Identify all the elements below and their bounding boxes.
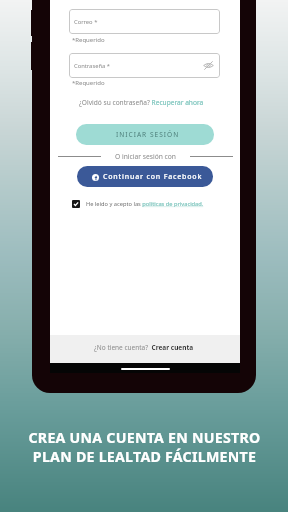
staticText: *Requerido bbox=[72, 36, 105, 44]
button[interactable]: He leído y acepto las políticas de priva… bbox=[72, 198, 204, 210]
button[interactable]: Continuar con Facebook bbox=[77, 166, 213, 187]
staticText: Contraseña * bbox=[74, 62, 110, 70]
staticText: ¿Olvidó su contraseña? Recuperar ahora bbox=[79, 98, 204, 107]
staticText: INICIAR SESIÓN bbox=[116, 130, 180, 139]
staticText: O iniciar sesión con bbox=[115, 152, 176, 161]
button[interactable]: INICIAR SESIÓN bbox=[76, 124, 214, 145]
button[interactable]: ¿Olvidó su contraseña? Recuperar ahora bbox=[79, 98, 204, 107]
button[interactable]: Contraseña * bbox=[69, 53, 220, 78]
other: Show password bbox=[203, 60, 214, 71]
button[interactable]: ¿No tiene cuenta? Crear cuenta bbox=[94, 343, 194, 352]
staticText: ¿No tiene cuenta? Crear cuenta bbox=[94, 343, 194, 352]
staticText: CREA UNA CUENTA EN NUESTRO PLAN DE LEALT… bbox=[28, 428, 261, 466]
button[interactable]: Correo * bbox=[69, 9, 220, 34]
staticText: Continuar con Facebook bbox=[103, 172, 203, 182]
staticText: Correo * bbox=[74, 18, 98, 26]
staticText: *Requerido bbox=[72, 79, 105, 87]
staticText: He leído y acepto las políticas de priva… bbox=[86, 200, 204, 208]
